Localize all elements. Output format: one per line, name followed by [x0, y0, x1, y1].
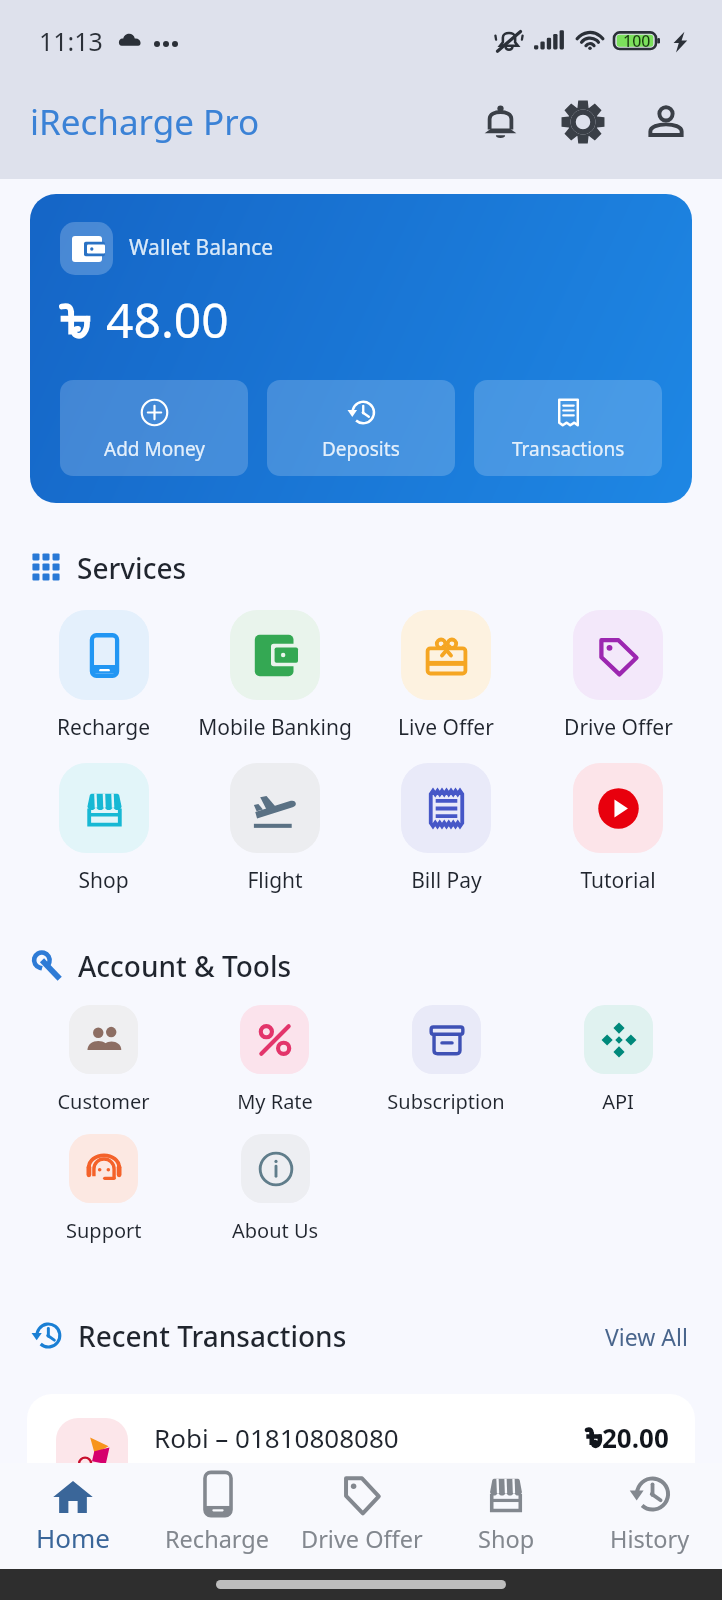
button[interactable]: Mobile Banking	[189, 610, 360, 742]
staticText: 100	[623, 30, 651, 52]
button[interactable]: Deposits	[267, 380, 455, 476]
button[interactable]: Bill Pay	[360, 763, 532, 895]
button[interactable]: Shop	[434, 1463, 578, 1569]
button[interactable]: Notifications	[468, 90, 532, 154]
staticText: Recharge	[57, 713, 150, 742]
staticText: Recent Transactions	[78, 1317, 347, 1353]
button[interactable]: Support	[18, 1134, 189, 1244]
staticText: Shop	[478, 1523, 535, 1555]
staticText: Recharge	[165, 1523, 270, 1555]
button[interactable]: Profile	[634, 90, 698, 154]
staticText: Success	[596, 1460, 669, 1487]
staticText: Flight	[247, 866, 303, 895]
button[interactable]: Recharge	[145, 1463, 290, 1569]
staticText: View All	[605, 1321, 688, 1349]
button[interactable]: Home	[0, 1463, 145, 1569]
staticText: Wallet Balance	[129, 233, 274, 262]
staticText: 48.00	[106, 287, 229, 352]
staticText: Add Money	[104, 436, 205, 462]
staticText: Customer	[57, 1088, 150, 1115]
staticText: Account & Tools	[78, 947, 292, 983]
button[interactable]: Tutorial	[532, 763, 704, 895]
staticText: Home	[36, 1520, 110, 1555]
button[interactable]: About Us	[189, 1134, 361, 1244]
button[interactable]: Drive Offer	[532, 610, 704, 742]
staticText: Live Offer	[398, 713, 494, 742]
staticText: Shop	[78, 866, 129, 895]
button[interactable]: Subscription	[360, 1005, 532, 1115]
staticText: Robi – 01810808080	[154, 1420, 399, 1455]
button[interactable]: Robi – 01810808080	[27, 1394, 695, 1513]
staticText: Mobile Banking	[198, 713, 352, 742]
button[interactable]: Shop	[18, 763, 189, 895]
staticText: 11:13	[39, 24, 103, 58]
staticText: Transactions	[512, 436, 625, 462]
staticText: Deposits	[322, 436, 400, 462]
button[interactable]: Customer	[18, 1005, 189, 1115]
button[interactable]: History	[578, 1463, 722, 1569]
button[interactable]: Wallet Balance	[30, 194, 692, 503]
button[interactable]: Flight	[189, 763, 360, 895]
staticText: Tutorial	[580, 866, 656, 895]
staticText: Mobile Recharge	[154, 1460, 312, 1487]
staticText: My Rate	[237, 1088, 313, 1115]
button[interactable]: View All	[601, 1317, 692, 1353]
button[interactable]: Transactions	[474, 380, 662, 476]
staticText: Drive Offer	[564, 713, 673, 742]
button[interactable]: Add Money	[60, 380, 248, 476]
staticText: iRecharge Pro	[30, 98, 260, 146]
button[interactable]: Recharge	[18, 610, 189, 742]
staticText: API	[602, 1088, 634, 1115]
button[interactable]: Live Offer	[360, 610, 532, 742]
button[interactable]: API	[532, 1005, 704, 1115]
staticText: Bill Pay	[411, 866, 482, 895]
staticText: About Us	[232, 1217, 319, 1244]
staticText: 20.00	[602, 1420, 669, 1455]
staticText: Support	[66, 1217, 142, 1244]
staticText: History	[610, 1523, 690, 1555]
staticText: Subscription	[387, 1088, 505, 1115]
staticText: Services	[77, 549, 187, 585]
button[interactable]: My Rate	[189, 1005, 360, 1115]
staticText: Drive Offer	[301, 1523, 423, 1555]
button[interactable]: Settings	[551, 90, 615, 154]
button[interactable]: Drive Offer	[290, 1463, 434, 1569]
